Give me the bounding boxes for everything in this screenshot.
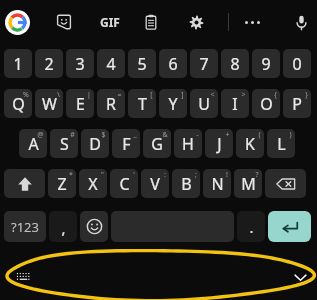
button[interactable]: Google search [4, 9, 31, 36]
button[interactable]: ?123 [4, 211, 46, 242]
button[interactable]: 3 [66, 49, 94, 78]
button[interactable]: 6 [159, 49, 187, 78]
staticText: [ [150, 90, 153, 100]
staticText: O [260, 93, 273, 115]
staticText: _ [133, 130, 137, 140]
staticText: U [198, 93, 210, 115]
button[interactable]: Shift [4, 169, 45, 198]
button[interactable]: L [267, 129, 295, 158]
button[interactable]: Switch keyboard [12, 268, 34, 284]
staticText: , [61, 218, 66, 238]
button[interactable]: GIF [95, 10, 125, 34]
staticText: : [164, 170, 166, 180]
button[interactable]: 5 [128, 49, 156, 78]
staticText: + [225, 130, 230, 140]
staticText: GIF [100, 14, 120, 30]
staticText: Q [12, 93, 25, 115]
button[interactable]: F [112, 129, 140, 158]
staticText: 7 [199, 53, 209, 75]
staticText: \ [57, 90, 60, 100]
button[interactable]: Voice input [289, 10, 313, 34]
staticText: H [182, 133, 194, 155]
button[interactable]: Y [159, 89, 187, 118]
button[interactable]: S [50, 129, 78, 158]
button[interactable]: Z [48, 169, 76, 198]
button[interactable]: C [110, 169, 138, 198]
button[interactable]: . [237, 211, 265, 242]
staticText: 1 [13, 53, 23, 75]
staticText: # [70, 130, 75, 140]
button[interactable]: X [79, 169, 107, 198]
button[interactable]: U [190, 89, 218, 118]
button[interactable]: 2 [35, 49, 63, 78]
button[interactable]: Settings [184, 10, 208, 34]
button[interactable]: 0 [283, 49, 311, 78]
button[interactable]: M [234, 169, 262, 198]
staticText: ! [226, 170, 228, 180]
staticText: X [88, 173, 98, 195]
staticText: V [150, 173, 160, 195]
button[interactable]: Q [4, 89, 32, 118]
staticText: | [87, 90, 91, 100]
staticText: N [211, 173, 224, 195]
button[interactable]: Backspace [265, 169, 306, 198]
button[interactable]: B [172, 169, 200, 198]
button[interactable]: J [205, 129, 233, 158]
button[interactable]: 4 [97, 49, 125, 78]
staticText: T [138, 93, 147, 115]
button[interactable]: O [252, 89, 280, 118]
button[interactable]: Enter [268, 211, 311, 242]
button[interactable]: Clipboard [139, 10, 163, 34]
button[interactable]: D [81, 129, 109, 158]
button[interactable]: I [221, 89, 249, 118]
staticText: = [117, 90, 122, 100]
button[interactable]: N [203, 169, 231, 198]
staticText: } [305, 90, 308, 100]
button[interactable]: V [141, 169, 169, 198]
button[interactable]: Emoji [80, 211, 108, 242]
staticText: @ [37, 130, 44, 140]
button[interactable]: G [143, 129, 171, 158]
staticText: I [232, 93, 238, 115]
button[interactable]: , [49, 211, 77, 242]
button[interactable]: T [128, 89, 156, 118]
button[interactable]: R [97, 89, 125, 118]
button[interactable]: 8 [221, 49, 249, 78]
staticText: Y [168, 93, 178, 115]
button[interactable]: W [35, 89, 63, 118]
staticText: 4 [106, 53, 116, 75]
staticText: % [23, 90, 29, 100]
staticText: ' [133, 170, 135, 180]
staticText: ) [289, 130, 292, 140]
button[interactable]: Stickers [52, 10, 76, 34]
staticText: ? [255, 170, 259, 180]
staticText: " [101, 170, 104, 180]
staticText: ?123 [11, 218, 39, 236]
staticText: M [241, 173, 256, 195]
staticText: A [28, 133, 39, 155]
staticText: S [60, 133, 69, 155]
staticText: 5 [137, 53, 147, 75]
staticText: G [151, 133, 163, 155]
button[interactable]: H [174, 129, 202, 158]
staticText: B [181, 173, 192, 195]
staticText: F [122, 133, 131, 155]
button[interactable]: Hide keyboard [289, 266, 311, 288]
staticText: 8 [230, 53, 240, 75]
button[interactable]: A [19, 129, 47, 158]
staticText: Z [57, 173, 67, 195]
button[interactable]: P [283, 89, 311, 118]
staticText: L [277, 133, 286, 155]
button[interactable]: 9 [252, 49, 280, 78]
button[interactable]: 1 [4, 49, 32, 78]
button[interactable]: E [66, 89, 94, 118]
staticText: D [89, 133, 101, 155]
button[interactable]: K [236, 129, 264, 158]
staticText: J [217, 133, 222, 155]
staticText: P [292, 93, 302, 115]
staticText: > [241, 90, 246, 100]
button[interactable]: More options [240, 10, 264, 34]
staticText: 3 [75, 53, 85, 75]
button[interactable]: 7 [190, 49, 218, 78]
